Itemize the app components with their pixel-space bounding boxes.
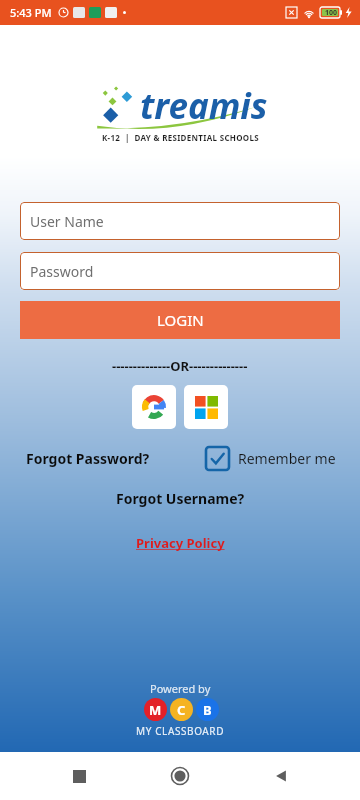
- button[interactable]: Privacy Policy: [130, 531, 231, 555]
- button[interactable]: Remember me: [206, 447, 336, 470]
- staticText: treamis: [140, 82, 268, 128]
- staticText: 5:43 PM: [10, 5, 52, 20]
- button[interactable]: Sign in with Microsoft: [184, 385, 228, 429]
- staticText: M: [149, 701, 162, 719]
- staticText: LOGIN: [157, 310, 204, 330]
- button[interactable]: Forgot Password?: [26, 445, 150, 472]
- staticText: Remember me: [238, 449, 336, 468]
- button[interactable]: LOGIN: [20, 301, 340, 339]
- staticText: User Name: [30, 212, 104, 231]
- staticText: Password: [30, 262, 94, 281]
- staticText: K-12 | DAY & RESIDENTIAL SCHOOLS: [102, 132, 259, 143]
- staticText: B: [203, 701, 212, 719]
- button[interactable]: Back: [259, 754, 303, 798]
- staticText: --------------OR--------------: [112, 357, 248, 375]
- button[interactable]: Sign in with Google: [132, 385, 176, 429]
- staticText: C: [177, 701, 186, 719]
- staticText: Privacy Policy: [136, 534, 225, 552]
- staticText: MY CLASSBOARD: [136, 724, 225, 738]
- button[interactable]: User Name: [20, 202, 340, 240]
- button[interactable]: Password: [20, 252, 340, 290]
- staticText: Forgot Username?: [116, 489, 245, 508]
- staticText: 100: [325, 8, 338, 18]
- button[interactable]: Forgot Username?: [110, 486, 251, 511]
- button[interactable]: Home: [158, 754, 202, 798]
- staticText: Forgot Password?: [26, 449, 150, 468]
- staticText: Powered by: [150, 681, 211, 696]
- button[interactable]: Recents: [57, 754, 101, 798]
